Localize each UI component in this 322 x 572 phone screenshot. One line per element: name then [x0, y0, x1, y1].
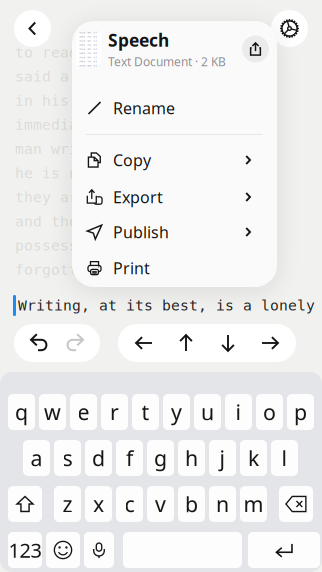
- staticText: w: [44, 398, 61, 426]
- button[interactable]: b: [178, 486, 205, 522]
- staticText: 123: [8, 537, 41, 563]
- staticText: Text Document · 2 KB: [108, 53, 226, 69]
- staticText: nuw mn ul: [79, 47, 97, 50]
- button[interactable]: Emoji: [46, 532, 80, 568]
- button[interactable]: u: [194, 394, 221, 430]
- staticText: nuw mn ul: [79, 64, 97, 67]
- button[interactable]: n: [209, 486, 236, 522]
- staticText: Export: [113, 186, 163, 208]
- staticText: u: [201, 398, 214, 426]
- staticText: possessed by the sam: [15, 237, 195, 254]
- button[interactable]: Move down: [207, 324, 249, 362]
- staticText: o: [263, 398, 276, 426]
- button[interactable]: Move left: [123, 324, 165, 362]
- staticText: Writing, at its best, is a lonely: [18, 297, 315, 314]
- button[interactable]: Move up: [165, 324, 207, 362]
- button[interactable]: Back: [14, 10, 51, 47]
- staticText: f: [126, 444, 133, 472]
- staticText: he is not alone bec: [15, 165, 186, 181]
- staticText: immediately the one: [15, 116, 186, 133]
- staticText: m: [243, 490, 263, 518]
- button[interactable]: s: [54, 440, 81, 476]
- staticText: i: [235, 398, 241, 426]
- button[interactable]: Export: [72, 179, 277, 215]
- staticText: said a man who likes: [15, 68, 195, 85]
- staticText: Speech: [108, 28, 169, 51]
- button[interactable]: Dictation: [84, 532, 114, 568]
- staticText: nuw mn ul: [79, 39, 97, 42]
- staticText: y: [171, 398, 182, 426]
- button[interactable]: i: [225, 394, 252, 430]
- staticText: l: [281, 444, 287, 472]
- button[interactable]: Copy: [72, 142, 277, 178]
- staticText: in his head, they are: [15, 92, 204, 109]
- button[interactable]: k: [240, 440, 267, 476]
- button[interactable]: z: [54, 486, 81, 522]
- staticText: they are nothing else: [15, 189, 204, 205]
- button[interactable]: Delete: [279, 486, 313, 522]
- button[interactable]: m: [240, 486, 267, 522]
- button[interactable]: j: [209, 440, 236, 476]
- staticText: x: [93, 490, 104, 518]
- staticText: v: [155, 490, 166, 518]
- staticText: man writes that he i: [15, 141, 195, 157]
- staticText: nuw mn ul: [79, 31, 97, 34]
- staticText: c: [124, 490, 134, 518]
- button[interactable]: Shift: [8, 486, 42, 522]
- staticText: Copy: [113, 149, 151, 171]
- button[interactable]: 123: [8, 532, 42, 568]
- button[interactable]: x: [85, 486, 112, 522]
- button[interactable]: Return: [248, 532, 320, 568]
- staticText: nuw mn ul: [79, 56, 97, 59]
- staticText: to read my speech to t: [15, 44, 213, 61]
- staticText: Rename: [113, 97, 175, 119]
- staticText: n: [216, 490, 229, 518]
- staticText: s: [62, 444, 72, 472]
- button[interactable]: Settings: [271, 10, 308, 47]
- button[interactable]: w: [39, 394, 66, 430]
- button[interactable]: c: [116, 486, 143, 522]
- staticText: h: [185, 444, 198, 472]
- staticText: k: [248, 444, 259, 472]
- button[interactable]: d: [85, 440, 112, 476]
- staticText: forgotten what he w: [15, 261, 186, 278]
- button[interactable]: v: [147, 486, 174, 522]
- staticText: z: [62, 490, 72, 518]
- staticText: wmu nw mi: [79, 52, 97, 55]
- button[interactable]: e: [70, 394, 97, 430]
- button[interactable]: Share: [242, 35, 269, 62]
- button[interactable]: Print: [72, 250, 277, 286]
- button[interactable]: r: [101, 394, 128, 430]
- staticText: d: [92, 444, 105, 472]
- staticText: Publish: [113, 221, 169, 243]
- staticText: and the one who is: [15, 213, 177, 230]
- button[interactable]: Redo: [57, 324, 91, 362]
- button[interactable]: a: [23, 440, 50, 476]
- staticText: wmu nw mi: [79, 60, 97, 63]
- button[interactable]: Move right: [249, 324, 291, 362]
- button[interactable]: q: [8, 394, 35, 430]
- staticText: e: [77, 398, 89, 426]
- button[interactable]: f: [116, 440, 143, 476]
- staticText: Print: [113, 257, 150, 279]
- button[interactable]: g: [147, 440, 174, 476]
- staticText: q: [15, 398, 28, 426]
- staticText: a: [30, 444, 42, 472]
- button[interactable]: t: [132, 394, 159, 430]
- staticText: t: [141, 398, 149, 426]
- button[interactable]: p: [287, 394, 314, 430]
- button[interactable]: Publish: [72, 214, 277, 250]
- staticText: wmu nw mi: [79, 43, 97, 46]
- button[interactable]: h: [178, 440, 205, 476]
- button[interactable]: l: [271, 440, 298, 476]
- button[interactable]: Rename: [72, 90, 277, 126]
- staticText: b: [185, 490, 198, 518]
- button[interactable]: Undo: [23, 324, 57, 362]
- staticText: r: [110, 398, 119, 426]
- staticText: g: [154, 444, 167, 472]
- button[interactable]: o: [256, 394, 283, 430]
- button[interactable]: y: [163, 394, 190, 430]
- staticText: p: [294, 398, 307, 426]
